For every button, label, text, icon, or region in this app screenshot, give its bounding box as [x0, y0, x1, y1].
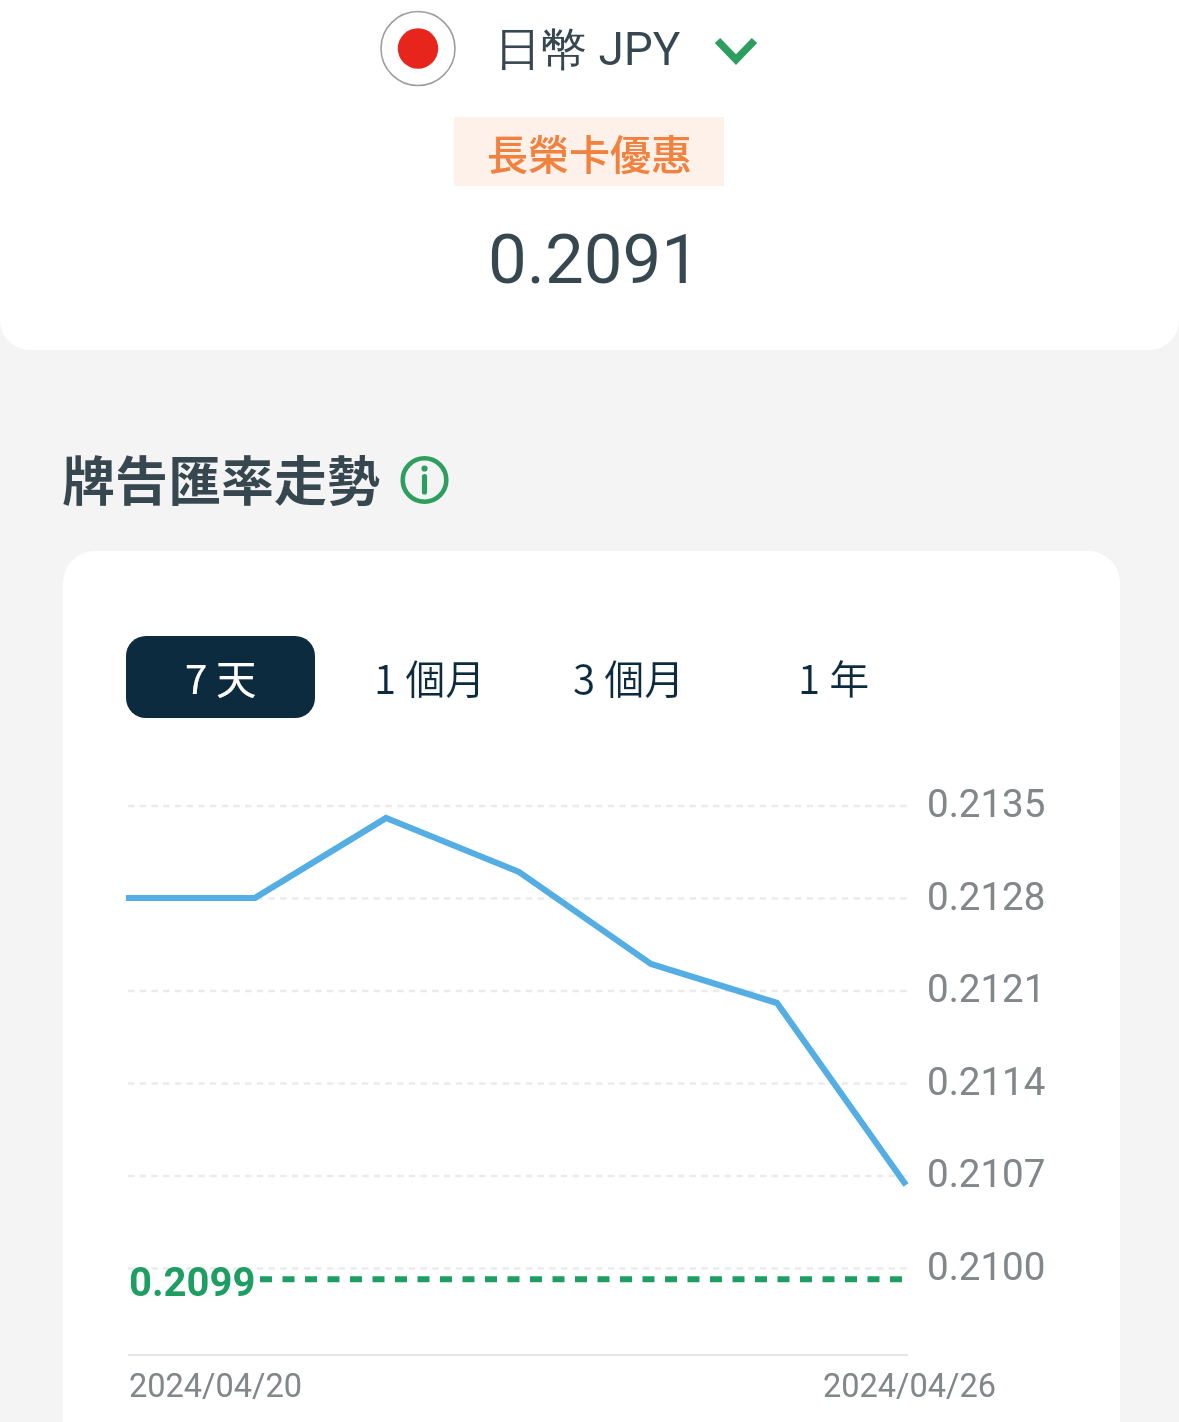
button[interactable]: Select currency [380, 12, 758, 88]
staticText: 牌告匯率走勢 [62, 440, 380, 517]
staticText: 0.2100 [927, 1244, 1046, 1289]
staticText: 日幣 JPY [495, 21, 681, 79]
button[interactable]: 1 個月 [350, 636, 510, 718]
staticText: 0.2128 [927, 874, 1046, 919]
staticText: 7 天 [185, 648, 257, 706]
button[interactable]: 1 年 [754, 636, 914, 718]
button[interactable]: 3 個月 [549, 636, 709, 718]
button[interactable]: Info [398, 456, 444, 502]
staticText: 2024/04/26 [823, 1367, 996, 1405]
staticText: 0.2135 [927, 781, 1046, 826]
staticText: 0.2091 [488, 219, 701, 300]
staticText: 1 年 [798, 648, 870, 706]
staticText: 0.2114 [927, 1059, 1046, 1104]
staticText: 長榮卡優惠 [487, 122, 692, 181]
staticText: 2024/04/20 [129, 1367, 302, 1405]
button[interactable]: 7 天 [126, 636, 315, 718]
staticText: 0.2121 [927, 966, 1046, 1011]
staticText: 0.2099 [129, 1259, 256, 1306]
staticText: 3 個月 [573, 648, 685, 706]
staticText: 0.2107 [927, 1151, 1046, 1196]
staticText: 1 個月 [374, 648, 486, 706]
